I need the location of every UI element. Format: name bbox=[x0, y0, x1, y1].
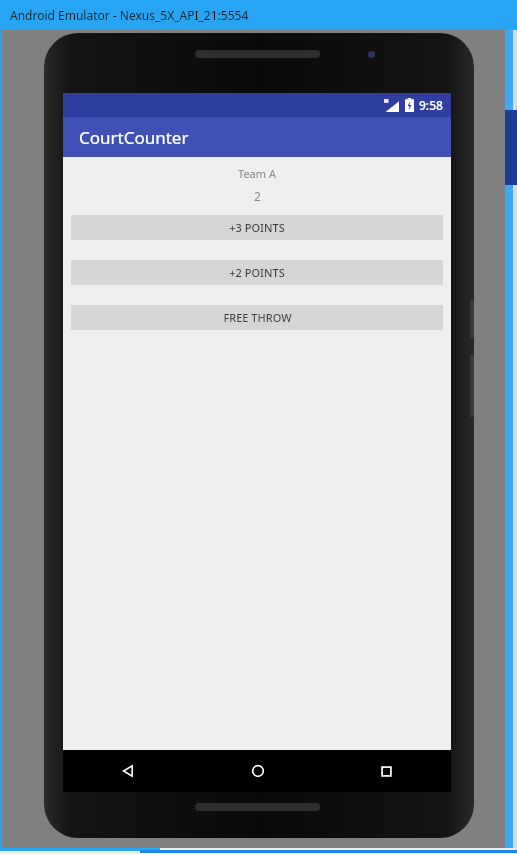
staticText: Android Emulator - Nexus_5X_API_21:5554 bbox=[10, 7, 249, 23]
button[interactable]: Recents bbox=[322, 750, 451, 792]
staticText: Team A bbox=[238, 166, 276, 181]
staticText: 2 bbox=[254, 188, 261, 204]
button[interactable]: Back bbox=[63, 750, 193, 792]
staticText: +2 POINTS bbox=[229, 265, 285, 280]
staticText: FREE THROW bbox=[223, 310, 292, 325]
staticText: +3 POINTS bbox=[229, 220, 285, 235]
staticText: CourtCounter bbox=[79, 126, 189, 149]
button[interactable]: Home bbox=[193, 750, 322, 792]
button[interactable]: +3 POINTS bbox=[71, 215, 443, 240]
button[interactable]: +2 POINTS bbox=[71, 260, 443, 285]
staticText: 9:58 bbox=[419, 97, 443, 113]
button[interactable]: FREE THROW bbox=[71, 305, 443, 330]
